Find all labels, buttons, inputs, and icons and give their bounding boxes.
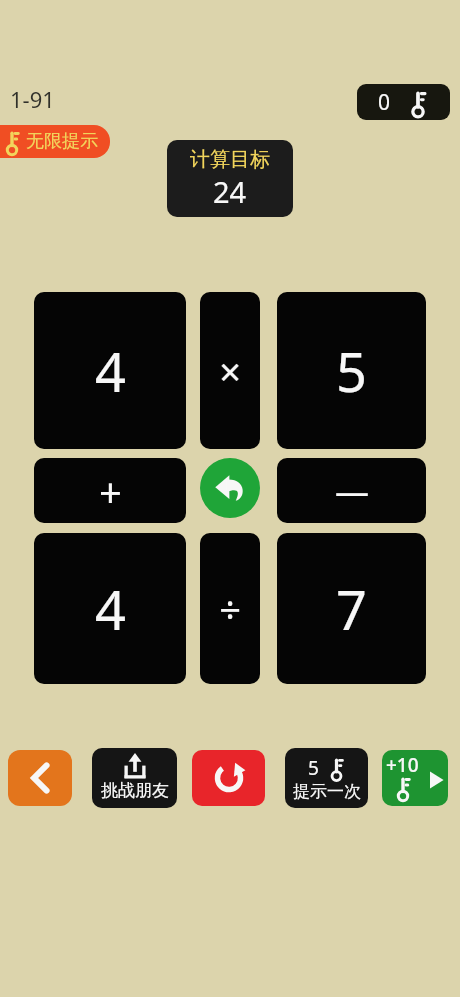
staticText: +10 <box>386 752 419 778</box>
button[interactable]: 4 <box>34 533 186 684</box>
staticText: 挑战朋友 <box>101 780 169 801</box>
staticText: 4 <box>95 334 126 408</box>
staticText: 1-91 <box>10 84 55 114</box>
button[interactable]: Restart <box>192 750 265 806</box>
button[interactable]: 4 <box>34 292 186 449</box>
staticText: 5 <box>336 334 367 408</box>
button[interactable]: 7 <box>277 533 426 684</box>
button[interactable]: + <box>34 458 186 523</box>
button[interactable]: × <box>200 292 260 449</box>
button[interactable]: 5 <box>277 292 426 449</box>
button[interactable]: 0 <box>357 84 450 120</box>
staticText: 4 <box>95 572 126 646</box>
button[interactable]: 5 <box>285 748 368 808</box>
button[interactable]: 计算目标 <box>167 140 293 217</box>
staticText: 5 <box>308 755 319 781</box>
staticText: ÷ <box>219 583 241 635</box>
staticText: 提示一次 <box>293 781 361 802</box>
button[interactable]: ÷ <box>200 533 260 684</box>
staticText: 无限提示 <box>26 130 98 153</box>
button[interactable]: — <box>277 458 426 523</box>
staticText: 计算目标 <box>190 147 270 172</box>
staticText: 0 <box>378 88 391 117</box>
button[interactable]: Back <box>8 750 72 806</box>
staticText: + <box>99 464 122 518</box>
staticText: — <box>335 468 369 514</box>
staticText: 7 <box>336 572 367 646</box>
button[interactable]: 无限提示 <box>0 125 110 158</box>
button[interactable]: Undo <box>200 458 260 518</box>
button[interactable]: 挑战朋友 <box>92 748 177 808</box>
button[interactable]: Watch ad for 10 keys <box>382 750 448 806</box>
staticText: × <box>219 345 241 397</box>
staticText: 24 <box>213 172 247 211</box>
